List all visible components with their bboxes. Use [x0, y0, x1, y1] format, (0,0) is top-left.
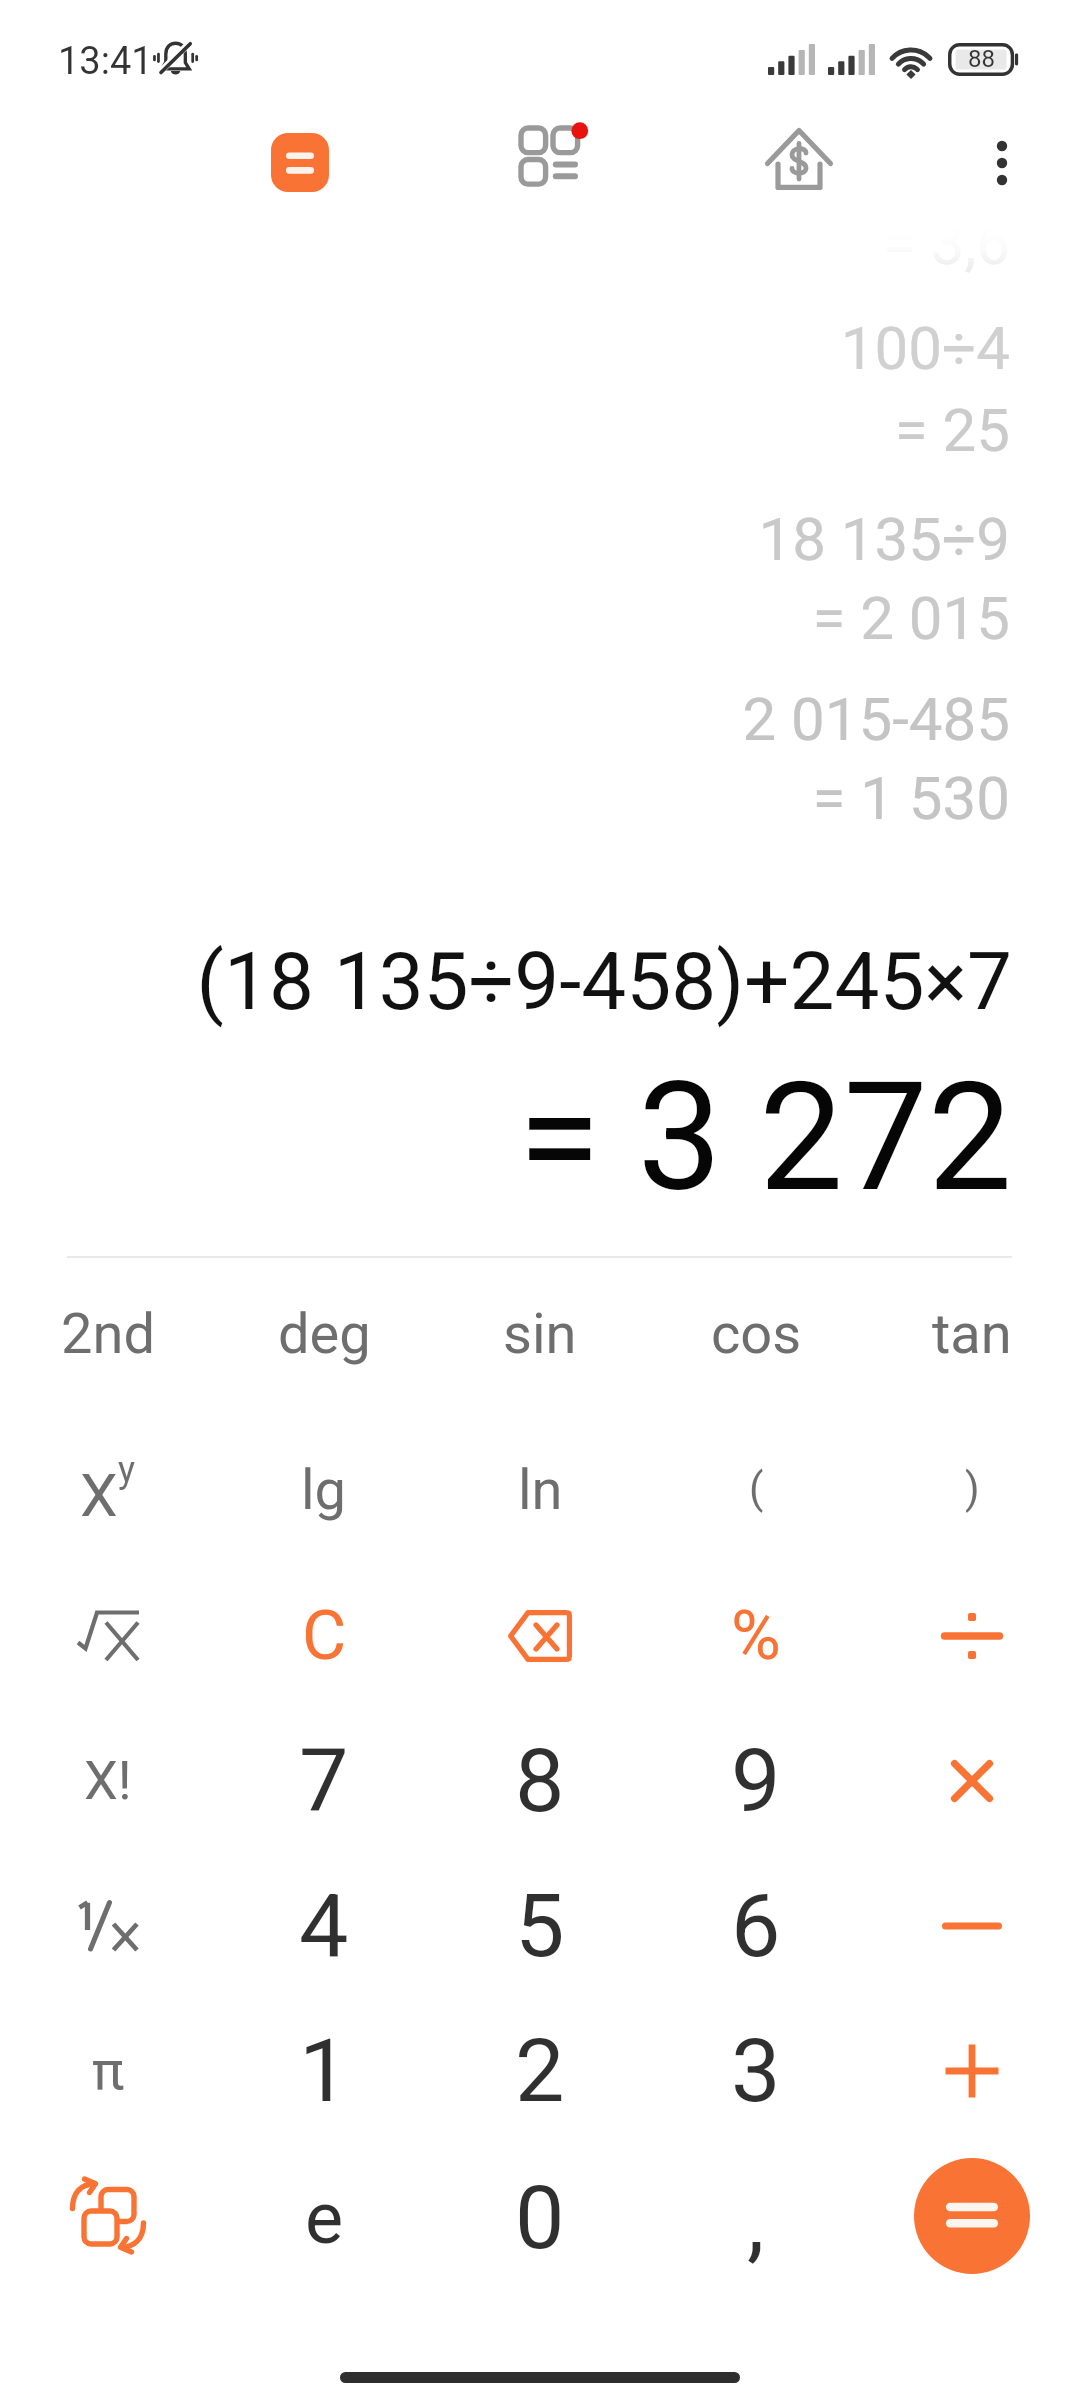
button[interactable]: Multiply	[864, 1708, 1080, 1853]
staticText: 88	[968, 45, 995, 73]
button[interactable]: ln	[432, 1418, 648, 1563]
button[interactable]: (	[648, 1418, 864, 1563]
staticText: 8	[515, 1729, 565, 1832]
button[interactable]: tan	[864, 1274, 1080, 1418]
button[interactable]: Backspace	[432, 1563, 648, 1708]
button[interactable]: sin	[432, 1274, 648, 1418]
button[interactable]: cos	[648, 1274, 864, 1418]
staticText: (	[749, 1464, 764, 1513]
button[interactable]: e	[216, 2143, 432, 2288]
button[interactable]: 8	[432, 1708, 648, 1853]
staticText: 100÷4	[840, 313, 1010, 383]
button[interactable]: 5	[432, 1853, 648, 1998]
button[interactable]: π	[0, 1998, 216, 2143]
staticText: 5	[515, 1874, 565, 1977]
staticText: = 2 015	[812, 583, 1010, 653]
staticText: )	[965, 1464, 980, 1513]
button[interactable]: 2	[432, 1998, 648, 2143]
button[interactable]: ,	[648, 2143, 864, 2288]
button[interactable]: X	[0, 1418, 216, 1563]
button[interactable]: Calculator	[251, 113, 349, 211]
staticText: y	[118, 1449, 136, 1491]
button[interactable]: X!	[0, 1708, 216, 1853]
staticText: 2nd	[61, 1301, 155, 1367]
button[interactable]: 2nd	[0, 1274, 216, 1418]
staticText: sin	[503, 1301, 577, 1367]
button[interactable]: lg	[216, 1418, 432, 1563]
button[interactable]: 3	[648, 1998, 864, 2143]
button[interactable]: 0	[432, 2143, 648, 2288]
staticText: 3	[731, 2019, 781, 2122]
staticText: π	[92, 2039, 125, 2102]
staticText: e	[305, 2176, 344, 2260]
button[interactable]: Minus	[864, 1853, 1080, 1998]
button[interactable]: %	[648, 1563, 864, 1708]
button[interactable]: 4	[216, 1853, 432, 1998]
button[interactable]: 9	[648, 1708, 864, 1853]
button[interactable]: Swap units	[0, 2143, 216, 2288]
staticText: cos	[711, 1301, 802, 1367]
staticText: 6	[731, 1874, 781, 1977]
staticText: ,	[747, 2169, 765, 2272]
staticText: ln	[518, 1457, 563, 1523]
staticText: X	[80, 1460, 118, 1530]
staticText: (18 135÷9-458)+245×7	[196, 935, 1012, 1029]
staticText: C	[302, 1596, 347, 1676]
button[interactable]: Plus	[864, 1998, 1080, 2143]
staticText: 1	[299, 2019, 349, 2122]
button[interactable]: Reciprocal	[0, 1853, 216, 1998]
staticText: 2 015-485	[742, 684, 1010, 754]
staticText: 13:41	[58, 39, 153, 84]
staticText: 0	[515, 2166, 565, 2269]
staticText: %	[731, 1596, 781, 1676]
staticText: X!	[84, 1749, 132, 1812]
staticText: = 3 272	[518, 1050, 1012, 1226]
button[interactable]: Divide	[864, 1563, 1080, 1708]
staticText: = 25	[894, 395, 1010, 465]
button[interactable]: More options	[954, 115, 1050, 211]
button[interactable]: Converters	[503, 108, 599, 204]
button[interactable]: Loan calculator	[751, 108, 847, 204]
staticText: 18 135÷9	[758, 504, 1010, 574]
staticText: 7	[299, 1729, 349, 1832]
button[interactable]: 1	[216, 1998, 432, 2143]
button[interactable]: )	[864, 1418, 1080, 1563]
staticText: deg	[278, 1301, 371, 1367]
button[interactable]: Equals	[864, 2143, 1080, 2288]
button[interactable]: 6	[648, 1853, 864, 1998]
staticText: 9	[731, 1729, 781, 1832]
button[interactable]: deg	[216, 1274, 432, 1418]
staticText: 4	[299, 1874, 349, 1977]
staticText: = 1 530	[812, 763, 1010, 833]
staticText: 2	[515, 2019, 565, 2122]
button[interactable]: C	[216, 1563, 432, 1708]
staticText: lg	[301, 1457, 347, 1523]
button[interactable]: Square root	[0, 1563, 216, 1708]
staticText: tan	[932, 1301, 1012, 1367]
button[interactable]: 7	[216, 1708, 432, 1853]
